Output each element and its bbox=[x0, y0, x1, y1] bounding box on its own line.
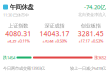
staticText: 深证成指 bbox=[44, 23, 64, 29]
staticText: 创业板指 bbox=[81, 23, 101, 29]
staticText: 3281.45 bbox=[78, 29, 104, 38]
staticText: +70.44 bbox=[42, 38, 53, 44]
staticText: +0.53% bbox=[91, 38, 103, 44]
staticText: 涨3652 bbox=[94, 55, 106, 60]
staticText: +0.50% bbox=[55, 38, 67, 44]
staticText: 今日两市成交额13903亿 bbox=[3, 65, 45, 71]
staticText: 11:30 已休市中 bbox=[3, 12, 29, 18]
staticText: 较上一日减少6418亿 bbox=[70, 65, 106, 71]
staticText: -74.20亿 bbox=[84, 3, 106, 11]
staticText: +4.39 bbox=[7, 38, 16, 44]
staticText: 14043.17 bbox=[39, 29, 69, 38]
staticText: 午间休盘 bbox=[9, 3, 33, 11]
button[interactable]: 深证成指 bbox=[36, 23, 73, 44]
button[interactable]: 创业板指 bbox=[73, 23, 109, 44]
staticText: 北向资金净流入 bbox=[78, 12, 106, 17]
staticText: +17.17 bbox=[79, 38, 90, 44]
button[interactable]: 上证指数 bbox=[0, 23, 36, 44]
staticText: 4080.31 bbox=[5, 29, 31, 38]
staticText: +0.11% bbox=[17, 38, 29, 44]
staticText: 上证指数 bbox=[8, 23, 28, 29]
staticText: 跌1454 bbox=[3, 55, 15, 60]
